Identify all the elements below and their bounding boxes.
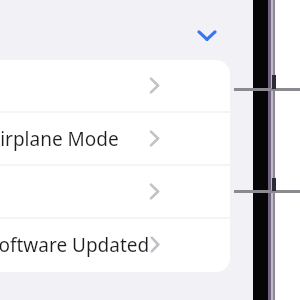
staticText: Software Updated (0, 232, 150, 258)
button[interactable]: Software Updated (0, 219, 230, 270)
button[interactable]: Collapse section (191, 22, 223, 48)
button[interactable] (0, 166, 230, 217)
staticText: Airplane Mode (0, 126, 119, 152)
button[interactable] (0, 60, 230, 111)
button[interactable]: Airplane Mode (0, 113, 230, 164)
